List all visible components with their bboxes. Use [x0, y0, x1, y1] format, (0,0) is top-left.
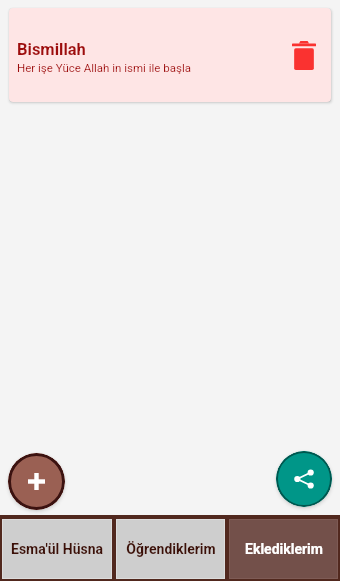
- staticText: Her işe Yüce Allah in ismi ile başla: [17, 61, 191, 74]
- staticText: Bismillah: [17, 40, 86, 59]
- button[interactable]: Bismillah: [9, 8, 331, 102]
- button[interactable]: Öğrendiklerim: [116, 519, 225, 579]
- button[interactable]: Add: [8, 453, 65, 510]
- staticText: Öğrendiklerim: [126, 541, 216, 557]
- staticText: Eklediklerim: [245, 541, 323, 557]
- button[interactable]: Delete: [283, 34, 325, 76]
- button[interactable]: Esma'ül Hüsna: [2, 519, 112, 579]
- button[interactable]: Share: [276, 451, 332, 507]
- button[interactable]: Eklediklerim: [229, 519, 338, 579]
- staticText: Esma'ül Hüsna: [11, 541, 103, 557]
